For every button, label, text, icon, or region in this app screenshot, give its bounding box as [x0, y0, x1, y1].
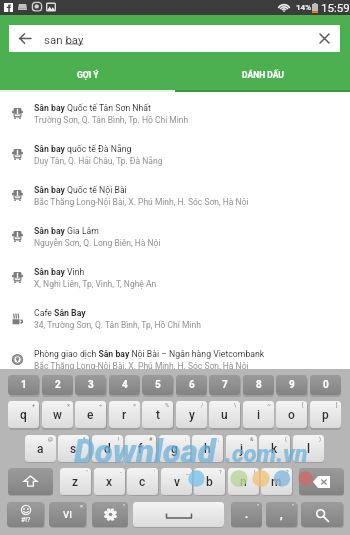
button[interactable]: ,: [266, 502, 297, 527]
button[interactable]: GỢI Ý: [0, 58, 175, 92]
staticText: =: [133, 402, 137, 408]
staticText: /: [201, 402, 204, 408]
button[interactable]: v: [161, 468, 192, 495]
staticText: u: [221, 408, 228, 422]
staticText: i: [257, 408, 261, 422]
staticText: ": [86, 469, 88, 475]
button[interactable]: s: [58, 435, 89, 462]
staticText: Trường Sơn, Q. Tân Bình, Tp. Hồ Chí Minh: [34, 115, 189, 125]
staticText: r: [122, 408, 127, 422]
button[interactable]: m: [261, 468, 292, 495]
staticText: ?: [219, 469, 222, 475]
button[interactable]: a: [25, 435, 56, 462]
button[interactable]: Backspace: [299, 468, 344, 495]
staticText: j: [240, 442, 244, 456]
staticText: san bay: [44, 33, 84, 46]
button[interactable]: 4: [109, 375, 140, 395]
button[interactable]: Emoji: [7, 502, 44, 527]
staticText: 4: [122, 379, 128, 391]
button[interactable]: Cafe Sân Bay: [0, 298, 350, 339]
button[interactable]: 3: [75, 375, 106, 395]
button[interactable]: 5: [142, 375, 173, 395]
button[interactable]: 2: [42, 375, 73, 395]
staticText: 9: [289, 379, 295, 391]
staticText: :: [185, 436, 187, 442]
button[interactable]: n: [228, 468, 259, 495]
button[interactable]: Space: [133, 502, 224, 527]
button[interactable]: Back: [9, 25, 340, 52]
button[interactable]: DÁNH DẤU: [175, 58, 350, 92]
button[interactable]: VI: [49, 502, 86, 527]
staticText: %: [165, 402, 170, 408]
staticText: t: [156, 408, 160, 422]
button[interactable]: x: [94, 468, 125, 495]
staticText: -: [120, 469, 122, 475]
button[interactable]: r: [109, 401, 140, 428]
button[interactable]: w: [42, 401, 73, 428]
button[interactable]: Sân bay quốc tế Đà Nẵng: [0, 134, 350, 175]
staticText: d: [104, 442, 111, 456]
staticText: Bắc Thăng Long-Nội Bài, X. Phú Minh, H. …: [34, 361, 249, 371]
button[interactable]: b: [194, 468, 225, 495]
button[interactable]: e: [75, 401, 106, 428]
button[interactable]: Shift: [8, 468, 53, 495]
staticText: b: [206, 475, 213, 489]
staticText: Duy Tân, Q. Hải Châu, Tp. Đà Nẵng: [34, 156, 163, 166]
staticText: Sân bay quốc tế Đà Nẵng: [34, 144, 132, 154]
button[interactable]: Sân bay Quốc tế Nội Bài: [0, 175, 350, 216]
button[interactable]: .: [231, 502, 262, 527]
staticText: .com.vn: [225, 440, 308, 468]
staticText: ÷: [99, 402, 103, 408]
staticText: ?: [286, 469, 289, 475]
button[interactable]: y: [176, 401, 207, 428]
button[interactable]: u: [209, 401, 240, 428]
button[interactable]: d: [92, 435, 123, 462]
button[interactable]: 9: [276, 375, 307, 395]
button[interactable]: z: [60, 468, 91, 495]
staticText: 6: [189, 379, 195, 391]
button[interactable]: 0: [310, 375, 341, 395]
staticText: ": [123, 503, 125, 509]
button[interactable]: Sân bay Gia Lâm: [0, 216, 350, 257]
staticText: (: [285, 436, 287, 442]
staticText: k: [271, 442, 278, 456]
button[interactable]: g: [159, 435, 190, 462]
button[interactable]: 8: [243, 375, 274, 395]
staticText: z: [72, 475, 79, 489]
staticText: Phòng giao dịch Sân bay Nội Bài – Ngân h…: [34, 349, 265, 359]
button[interactable]: l: [293, 435, 324, 462]
button[interactable]: k: [259, 435, 290, 462]
staticText: Download: [74, 432, 216, 471]
button[interactable]: p: [310, 401, 341, 428]
button[interactable]: Back: [9, 25, 49, 52]
staticText: Sân bay Quốc tế Tân Sơn Nhất: [34, 103, 151, 113]
button[interactable]: Phòng giao dịch Sân bay Nội Bài – Ngân h…: [0, 339, 350, 380]
button[interactable]: t: [142, 401, 173, 428]
button[interactable]: j: [226, 435, 257, 462]
button[interactable]: i: [243, 401, 274, 428]
staticText: VI: [63, 509, 72, 520]
button[interactable]: Clear query: [312, 25, 340, 52]
button[interactable]: 7: [209, 375, 240, 395]
button[interactable]: Sân bay Vinh: [0, 257, 350, 298]
staticText: Nguyễn Sơn, Q. Long Biên, Hà Nội: [34, 238, 161, 248]
button[interactable]: Search: [301, 502, 343, 527]
staticText: GỢI Ý: [77, 70, 99, 80]
button[interactable]: q: [8, 401, 39, 428]
staticText: ': [154, 469, 155, 475]
staticText: l: [307, 442, 311, 456]
staticText: !: [254, 469, 256, 475]
staticText: g: [171, 442, 178, 456]
staticText: [: [302, 402, 304, 408]
staticText: 15:59: [321, 1, 350, 14]
button[interactable]: Settings: [92, 502, 128, 527]
button[interactable]: h: [192, 435, 223, 462]
button[interactable]: 6: [176, 375, 207, 395]
button[interactable]: 1: [8, 375, 39, 395]
button[interactable]: c: [127, 468, 158, 495]
staticText: *: [83, 436, 86, 442]
button[interactable]: f: [125, 435, 156, 462]
staticText: @: [48, 436, 53, 442]
button[interactable]: Sân bay Quốc tế Tân Sơn Nhất: [0, 93, 350, 134]
button[interactable]: o: [276, 401, 307, 428]
